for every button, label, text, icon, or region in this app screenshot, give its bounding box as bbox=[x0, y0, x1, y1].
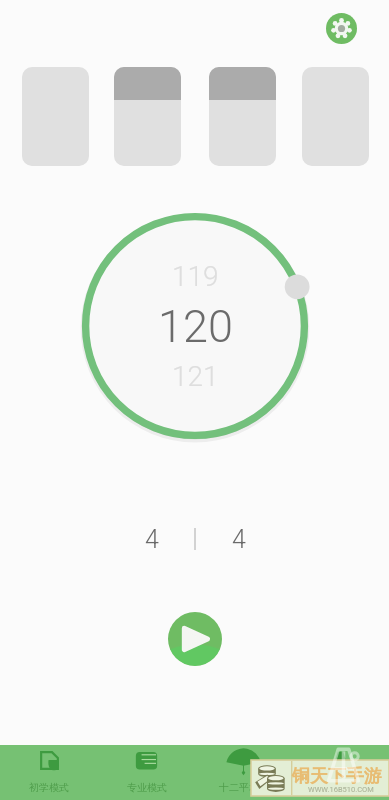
button[interactable] bbox=[22, 67, 89, 166]
staticText: 119 bbox=[172, 260, 219, 293]
button[interactable]: 4 bbox=[109, 520, 194, 558]
staticText: 4 bbox=[232, 525, 246, 554]
staticText: WWW.16B510.COM bbox=[308, 785, 374, 794]
button[interactable]: 4 bbox=[196, 520, 281, 558]
staticText: 120 bbox=[158, 300, 233, 353]
button[interactable] bbox=[209, 67, 276, 166]
button[interactable]: 专业模式 bbox=[98, 745, 195, 800]
button[interactable]: 十二平均律 bbox=[195, 745, 292, 800]
button[interactable]: Play bbox=[168, 612, 222, 666]
staticText: 铜天下手游 bbox=[292, 765, 382, 788]
button[interactable] bbox=[302, 67, 369, 166]
staticText: 4 bbox=[145, 525, 159, 554]
button[interactable]: Settings bbox=[326, 13, 357, 44]
button[interactable]: 初学模式 bbox=[0, 745, 98, 800]
staticText: 初学模式 bbox=[29, 781, 69, 794]
staticText: 十二平均律 bbox=[219, 781, 269, 794]
button[interactable]: 节拍器 bbox=[292, 745, 389, 800]
staticText: 121 bbox=[172, 360, 219, 393]
staticText: 专业模式 bbox=[127, 781, 167, 794]
staticText: 节拍器 bbox=[326, 781, 356, 794]
button[interactable] bbox=[114, 67, 181, 166]
